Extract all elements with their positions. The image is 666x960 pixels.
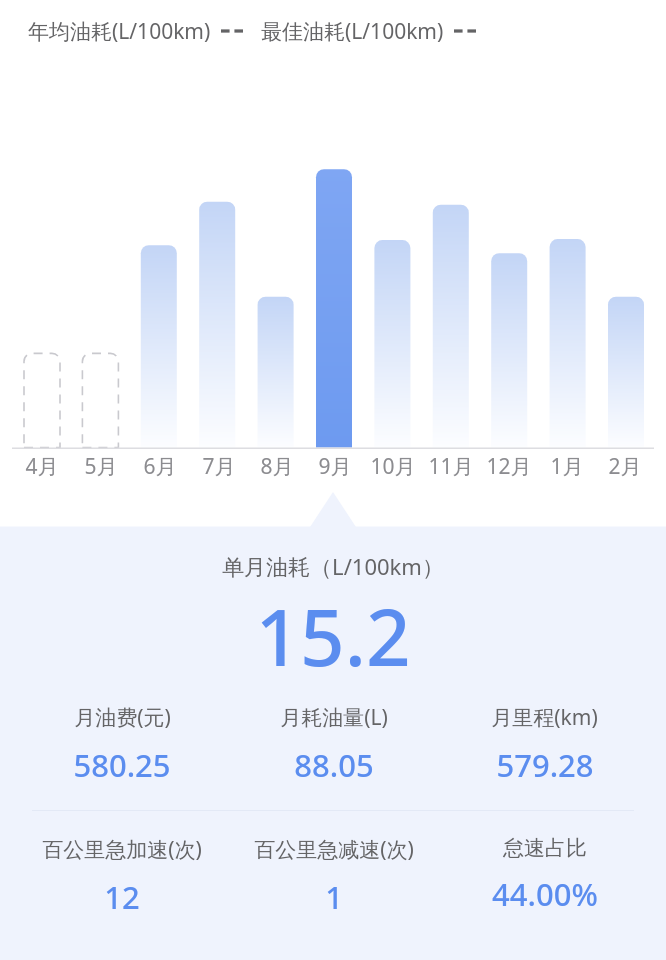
button[interactable]: 月油费(元)	[16, 703, 228, 786]
button[interactable]: 12月	[480, 452, 538, 481]
staticText: 2月	[608, 452, 642, 481]
staticText: 8月	[260, 452, 294, 481]
button[interactable]: 百公里急加速(次)	[16, 835, 228, 918]
staticText: 4月	[25, 452, 59, 481]
staticText: 5月	[84, 452, 118, 481]
staticText: 44.00%	[492, 873, 598, 915]
other: No data	[221, 22, 243, 40]
staticText: 1月	[550, 452, 584, 481]
staticText: 15.2	[0, 583, 666, 689]
staticText: 百公里急减速(次)	[254, 835, 414, 864]
staticText: 9月	[318, 452, 352, 481]
button[interactable]: 9月	[306, 452, 364, 481]
button[interactable]: 怠速占比	[439, 835, 650, 915]
button[interactable]: 月里程(km)	[439, 703, 650, 786]
button[interactable]: 10月	[364, 452, 422, 481]
staticText: 7月	[202, 452, 236, 481]
staticText: 百公里急加速(次)	[42, 835, 202, 864]
staticText: 12	[104, 876, 140, 918]
staticText: 10月	[370, 452, 416, 481]
button[interactable]: 2月	[596, 452, 654, 481]
staticText: 1	[325, 876, 343, 918]
other: No data	[454, 22, 476, 40]
button[interactable]: 11月	[422, 452, 480, 481]
button[interactable]: 6月	[130, 452, 189, 481]
staticText: 12月	[486, 452, 532, 481]
staticText: 月油费(元)	[74, 703, 171, 732]
staticText: 580.25	[73, 744, 171, 786]
staticText: 最佳油耗(L/100km)	[261, 17, 444, 46]
button[interactable]: 1月	[538, 452, 596, 481]
button[interactable]: 7月	[189, 452, 248, 481]
button[interactable]: 5月	[71, 452, 130, 481]
staticText: 月耗油量(L)	[280, 703, 388, 732]
staticText: 怠速占比	[503, 835, 587, 861]
button[interactable]: 百公里急减速(次)	[228, 835, 439, 918]
staticText: 年均油耗(L/100km)	[28, 17, 211, 46]
button[interactable]: 8月	[248, 452, 306, 481]
button[interactable]: 4月	[12, 452, 71, 481]
staticText: 88.05	[294, 744, 374, 786]
staticText: 6月	[143, 452, 177, 481]
staticText: 单月油耗（L/100km）	[0, 551, 666, 581]
staticText: 579.28	[496, 744, 594, 786]
staticText: 月里程(km)	[491, 703, 598, 732]
staticText: 11月	[428, 452, 474, 481]
button[interactable]: 月耗油量(L)	[228, 703, 439, 786]
